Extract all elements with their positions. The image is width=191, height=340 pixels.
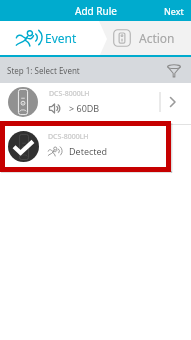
staticText: Add Rule [75,4,117,18]
button[interactable]: DCS-8000LH [0,83,191,121]
button[interactable]: DCS-8000LH [5,126,166,167]
staticText: Event [45,30,77,46]
button[interactable]: Event [16,29,77,46]
button[interactable]: Action [113,29,175,47]
staticText: Action [139,30,175,46]
staticText: Next [164,5,184,17]
staticText: Detected [69,145,108,157]
button[interactable]: Next [157,2,191,20]
button[interactable]: Filter [167,64,181,78]
staticText: Step 1: Select Event [7,65,80,76]
staticText: DCS-8000LH [49,89,90,99]
staticText: > 60DB [69,102,100,114]
staticText: DCS-8000LH [48,132,89,142]
